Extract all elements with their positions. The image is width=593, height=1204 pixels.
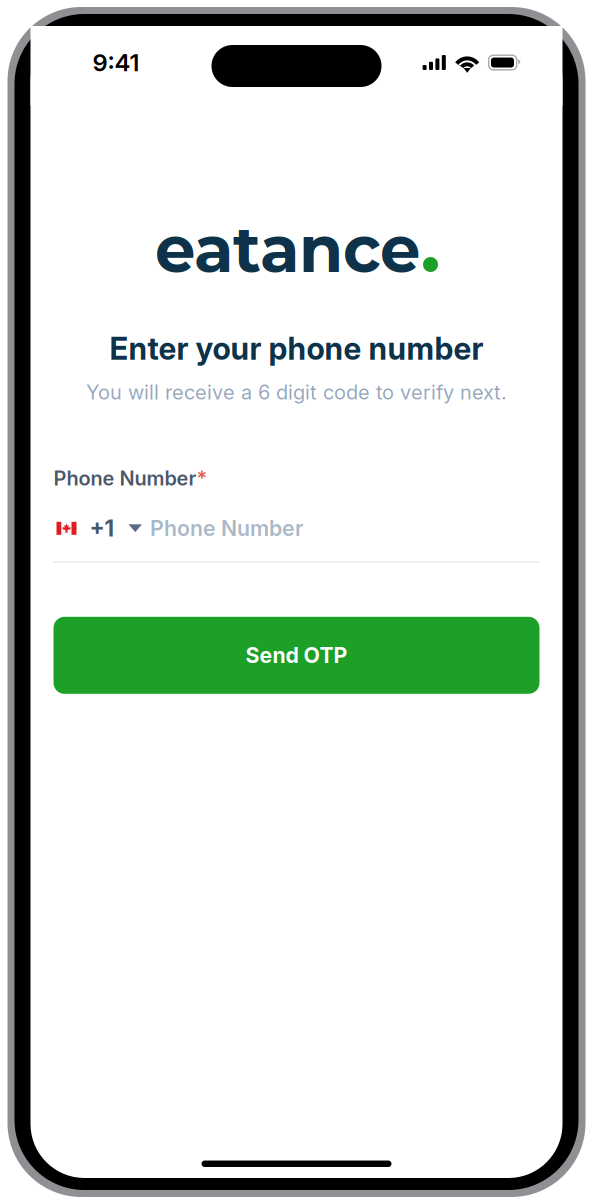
staticText: You will receive a 6 digit code to verif… xyxy=(86,380,507,404)
staticText: +1 xyxy=(89,515,114,542)
staticText: Send OTP xyxy=(245,642,347,668)
button[interactable]: Send OTP xyxy=(53,617,539,694)
staticText: * xyxy=(196,466,207,490)
staticText: Phone Number xyxy=(150,515,303,541)
staticText: eatance xyxy=(155,210,420,288)
staticText: Phone Number xyxy=(53,466,196,490)
button[interactable]: +1 xyxy=(53,518,539,538)
staticText: Enter your phone number xyxy=(109,330,483,367)
staticText: 9:41 xyxy=(92,48,139,77)
